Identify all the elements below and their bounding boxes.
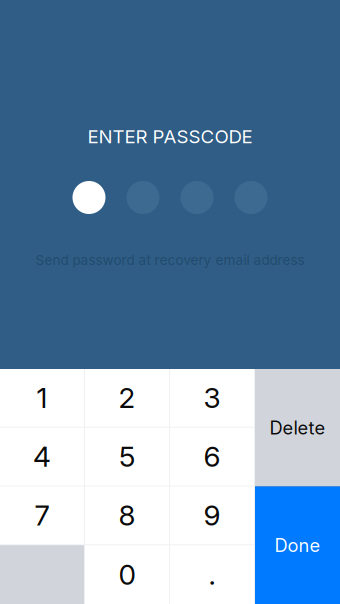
button[interactable]: 8 [85, 486, 170, 545]
button[interactable]: 2 [85, 369, 170, 428]
button[interactable]: 9 [170, 486, 255, 545]
button[interactable]: Send password at recovery email address [20, 252, 320, 268]
button[interactable]: Delete [255, 369, 340, 486]
staticText: 0 [118, 558, 135, 592]
staticText: ENTER PASSCODE [87, 125, 252, 148]
staticText: Done [274, 534, 320, 556]
button[interactable]: 3 [170, 369, 255, 428]
button[interactable]: 6 [170, 428, 255, 487]
button[interactable]: 7 [0, 486, 85, 545]
staticText: 1 [36, 381, 47, 415]
button[interactable]: Done [255, 486, 340, 604]
button[interactable]: 5 [85, 428, 170, 487]
button[interactable]: 1 [0, 369, 85, 428]
staticText: 7 [34, 498, 49, 532]
staticText: 2 [118, 381, 135, 415]
staticText: 4 [33, 440, 51, 474]
staticText: Delete [269, 417, 325, 439]
staticText: 3 [203, 381, 220, 415]
staticText: 8 [118, 498, 135, 532]
button[interactable]: . [170, 545, 255, 604]
staticText: Send password at recovery email address [35, 252, 304, 268]
button[interactable]: 4 [0, 428, 85, 487]
button[interactable]: 0 [85, 545, 170, 604]
staticText: 5 [119, 440, 135, 474]
staticText: . [208, 558, 215, 592]
staticText: 6 [203, 440, 220, 474]
staticText: 9 [203, 498, 220, 532]
